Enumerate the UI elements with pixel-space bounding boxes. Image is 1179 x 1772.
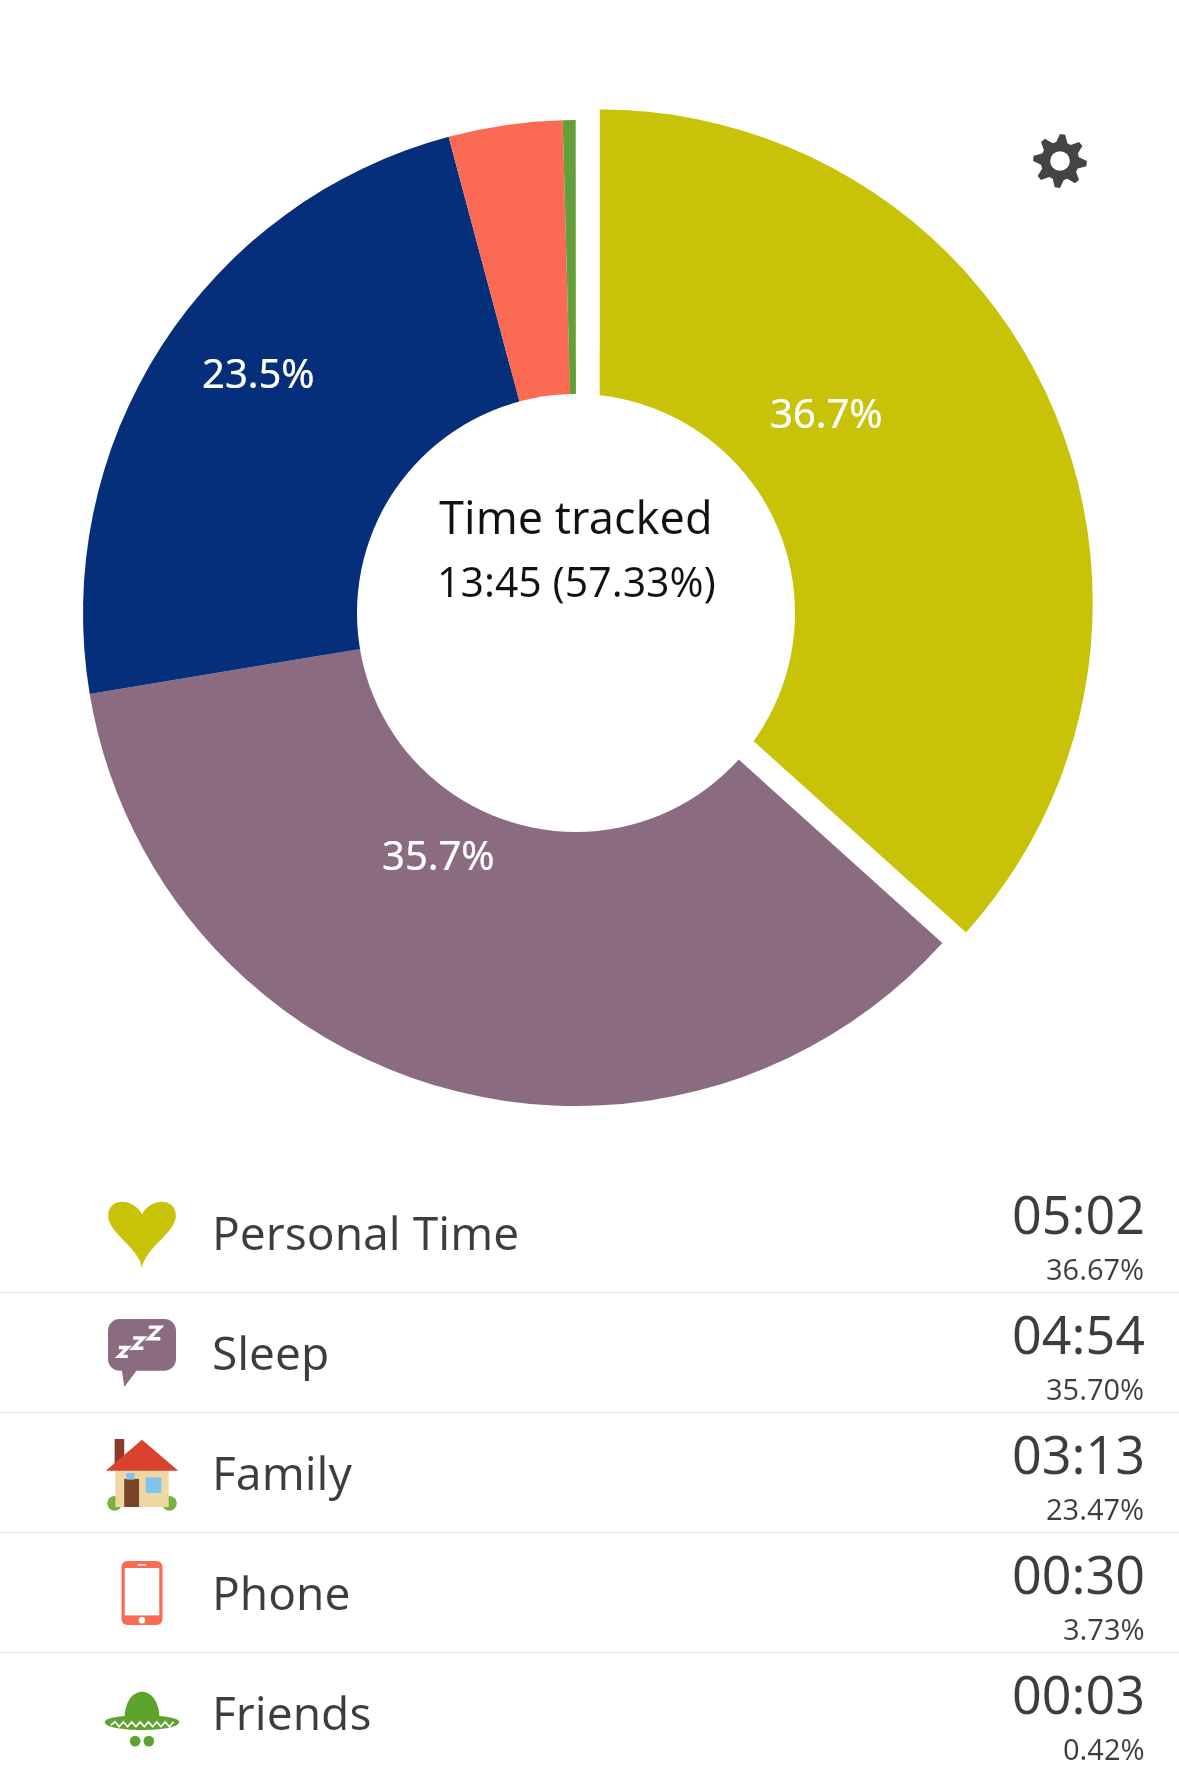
staticText: 35.7% bbox=[382, 827, 495, 881]
staticText: Time tracked bbox=[439, 486, 713, 547]
button[interactable]: Sleep bbox=[0, 1293, 1179, 1412]
button[interactable]: Family bbox=[0, 1413, 1179, 1532]
staticText: 36.67% bbox=[1046, 1249, 1145, 1288]
button[interactable]: Phone bbox=[0, 1533, 1179, 1652]
staticText: 36.7% bbox=[770, 385, 883, 439]
staticText: 05:02 bbox=[1012, 1178, 1145, 1249]
staticText: 3.73% bbox=[1063, 1609, 1145, 1648]
staticText: Personal Time bbox=[212, 1201, 520, 1264]
staticText: Sleep bbox=[212, 1321, 330, 1384]
staticText: 35.70% bbox=[1046, 1369, 1145, 1408]
staticText: 23.5% bbox=[202, 345, 315, 399]
button[interactable]: Personal Time bbox=[0, 1173, 1179, 1292]
staticText: 13:45 (57.33%) bbox=[437, 553, 716, 609]
staticText: Phone bbox=[212, 1561, 351, 1624]
button[interactable]: Settings bbox=[1026, 127, 1094, 195]
staticText: 23.47% bbox=[1046, 1489, 1145, 1528]
staticText: 03:13 bbox=[1012, 1418, 1145, 1489]
staticText: Friends bbox=[212, 1681, 372, 1744]
staticText: 00:03 bbox=[1012, 1658, 1145, 1729]
button[interactable]: Friends bbox=[0, 1653, 1179, 1772]
staticText: 04:54 bbox=[1012, 1298, 1145, 1369]
staticText: Family bbox=[212, 1441, 352, 1504]
staticText: 00:30 bbox=[1012, 1538, 1145, 1609]
staticText: 0.42% bbox=[1063, 1729, 1145, 1768]
